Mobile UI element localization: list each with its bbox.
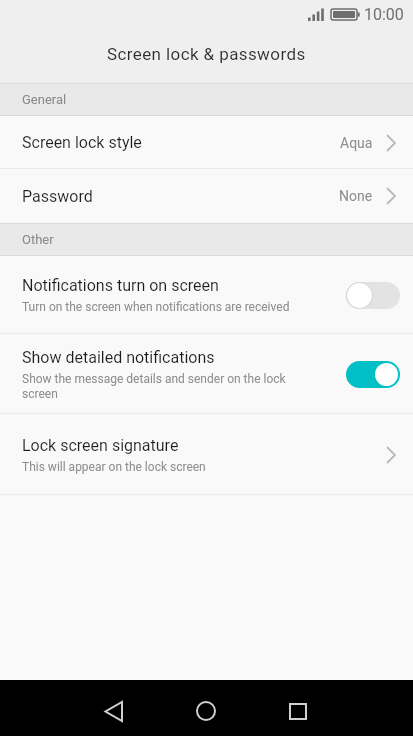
staticText: Screen lock & passwords [107, 44, 306, 64]
button[interactable]: Show detailed notifications [0, 334, 413, 414]
staticText: This will appear on the lock screen [22, 460, 206, 474]
staticText: Notifications turn on screen [22, 276, 219, 295]
staticText: Password [22, 187, 93, 206]
button[interactable] [346, 282, 400, 309]
staticText: 10:00 [364, 5, 404, 24]
button[interactable] [97, 699, 131, 723]
staticText: Aqua [340, 135, 373, 151]
button[interactable]: Screen lock style [0, 116, 413, 169]
staticText: Show detailed notifications [22, 348, 215, 367]
staticText: None [339, 188, 373, 204]
button[interactable] [346, 361, 400, 388]
button[interactable] [189, 699, 223, 723]
button[interactable]: Lock screen signature [0, 414, 413, 495]
staticText: Show the message details and sender on t… [22, 372, 320, 401]
button[interactable]: Password [0, 169, 413, 223]
button[interactable]: Notifications turn on screen [0, 256, 413, 334]
staticText: General [22, 92, 67, 107]
button[interactable] [281, 699, 315, 723]
staticText: Other [22, 232, 54, 247]
staticText: Screen lock style [22, 133, 142, 152]
staticText: Lock screen signature [22, 436, 179, 455]
staticText: Turn on the screen when notifications ar… [22, 300, 290, 314]
